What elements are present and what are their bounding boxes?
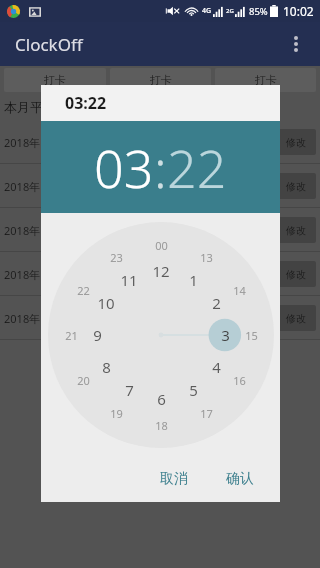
staticText: 7 xyxy=(125,380,134,400)
staticText: 1 xyxy=(189,270,198,290)
staticText: 23 xyxy=(110,250,123,265)
staticText: 03:22 xyxy=(65,92,107,114)
staticText: 14 xyxy=(233,283,246,298)
staticText: 4G xyxy=(202,6,212,16)
staticText: ClockOff xyxy=(15,33,83,56)
staticText: 打卡 xyxy=(150,73,172,87)
staticText: : xyxy=(154,132,167,203)
staticText: 17 xyxy=(200,406,213,421)
button[interactable]: 打卡 xyxy=(110,68,211,92)
staticText: 22 xyxy=(77,283,90,298)
staticText: 10 xyxy=(97,293,115,313)
staticText: 5 xyxy=(189,380,198,400)
staticText: 2018年10月15日 xyxy=(4,223,88,238)
staticText: 2 xyxy=(212,293,221,313)
button[interactable]: 修改 xyxy=(276,217,316,243)
staticText: 打卡 xyxy=(44,73,66,87)
staticText: 11 xyxy=(120,270,138,290)
button[interactable]: 打卡 xyxy=(4,68,106,92)
staticText: 取消 xyxy=(160,470,188,488)
staticText: 19 xyxy=(110,406,123,421)
staticText: 13 xyxy=(200,250,213,265)
staticText: 2018年10月15日 xyxy=(4,179,88,194)
staticText: 修改 xyxy=(286,224,306,237)
staticText: 打卡 xyxy=(255,73,277,87)
staticText: 00 xyxy=(155,238,168,253)
staticText: 9 xyxy=(93,325,102,345)
button[interactable]: 修改 xyxy=(276,173,316,199)
button[interactable]: 修改 xyxy=(276,261,316,287)
staticText: 本月平均上班时间 xyxy=(4,99,108,115)
button[interactable]: 22 xyxy=(167,132,227,203)
button[interactable]: 03 xyxy=(94,132,154,203)
staticText: 2018年10月15日 xyxy=(4,267,88,282)
button[interactable]: 取消 xyxy=(148,462,200,496)
staticText: 修改 xyxy=(286,180,306,193)
staticText: 8 xyxy=(102,357,111,377)
button[interactable]: 确认 xyxy=(214,462,266,496)
staticText: 修改 xyxy=(286,136,306,149)
staticText: 3 xyxy=(221,325,230,345)
staticText: 18 xyxy=(155,418,168,433)
button[interactable]: 修改 xyxy=(276,305,316,331)
button[interactable]: 打卡 xyxy=(215,68,316,92)
staticText: 10:02 xyxy=(283,3,314,19)
staticText: 21 xyxy=(65,328,78,343)
staticText: 85% xyxy=(249,5,268,18)
staticText: 确认 xyxy=(226,470,254,488)
button[interactable]: 修改 xyxy=(276,129,316,155)
staticText: 修改 xyxy=(286,268,306,281)
staticText: 2018年10月15日 xyxy=(4,311,88,326)
staticText: 12 xyxy=(152,261,170,281)
staticText: 2G xyxy=(226,7,234,15)
staticText: 修改 xyxy=(286,312,306,325)
button[interactable]: More options xyxy=(276,24,316,64)
staticText: 2018年10月15日 xyxy=(4,135,88,150)
staticText: 6 xyxy=(157,389,166,409)
staticText: 4 xyxy=(212,357,221,377)
staticText: 16 xyxy=(233,373,246,388)
staticText: 20 xyxy=(77,373,90,388)
staticText: 15 xyxy=(245,328,258,343)
